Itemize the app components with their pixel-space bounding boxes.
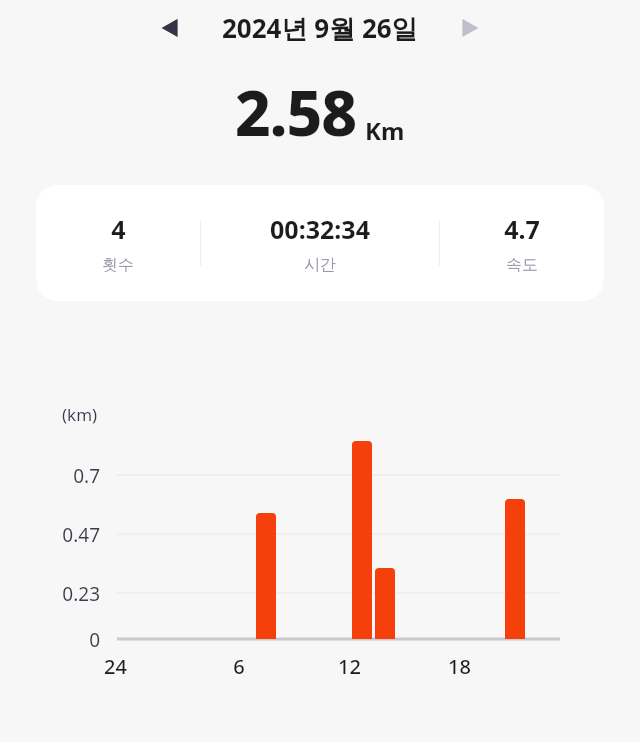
staticText: 0.7 (73, 463, 100, 489)
staticText: 18 (448, 653, 471, 680)
staticText: (km) (62, 403, 98, 426)
button[interactable]: 4 (36, 185, 604, 301)
staticText: 4.7 (504, 212, 540, 246)
staticText: 2024년 9월 26일 (222, 10, 418, 46)
button[interactable]: Next day (448, 6, 492, 50)
staticText: 횟수 (102, 255, 134, 275)
staticText: 4 (111, 212, 126, 246)
staticText: 0.47 (62, 522, 100, 548)
staticText: 6 (233, 653, 245, 680)
staticText: 12 (338, 653, 361, 680)
button[interactable]: 00:32:34 (201, 185, 439, 301)
staticText: 0.23 (62, 581, 100, 607)
button[interactable]: 4 (36, 185, 200, 301)
staticText: Km (365, 114, 405, 147)
staticText: 시간 (304, 255, 336, 275)
button[interactable]: 4.7 (440, 185, 604, 301)
staticText: 0 (89, 627, 100, 653)
button[interactable]: Previous day (148, 6, 192, 50)
staticText: 2.58 (235, 70, 357, 154)
staticText: 00:32:34 (270, 212, 370, 246)
staticText: 속도 (506, 255, 538, 275)
staticText: 24 (104, 653, 127, 680)
